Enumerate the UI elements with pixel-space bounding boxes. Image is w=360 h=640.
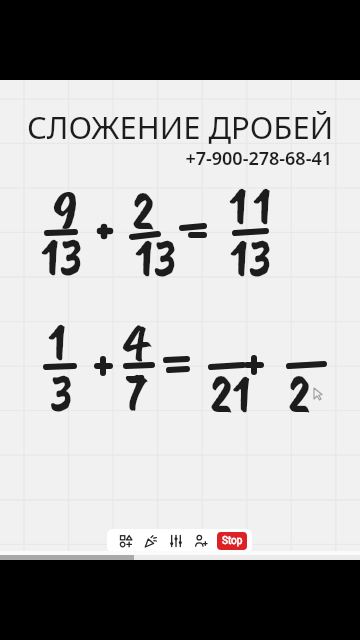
staticText: 13 xyxy=(135,224,177,292)
staticText: 9 xyxy=(53,176,78,244)
button[interactable]: Invite people xyxy=(188,529,213,553)
staticText: СЛОЖЕНИЕ ДРОБЕЙ xyxy=(0,106,360,148)
staticText: 2 xyxy=(132,177,155,245)
button[interactable]: Reactions xyxy=(138,529,163,553)
staticText: 2 xyxy=(288,360,311,428)
staticText: +7-900-278-68-41 xyxy=(0,146,332,171)
staticText: 1 xyxy=(229,172,248,240)
staticText: 13 xyxy=(230,224,272,292)
button[interactable]: Stop xyxy=(217,532,247,550)
button[interactable]: Tools xyxy=(163,529,188,553)
button[interactable]: Shapes xyxy=(113,529,138,553)
staticText: 21 xyxy=(210,360,252,428)
staticText: 1 xyxy=(48,308,67,376)
staticText: 7 xyxy=(126,359,148,427)
staticText: 1 xyxy=(253,172,272,240)
staticText: 4 xyxy=(124,308,149,376)
staticText: 3 xyxy=(50,359,74,427)
staticText: 13 xyxy=(41,223,83,291)
staticText: Stop xyxy=(222,535,243,547)
